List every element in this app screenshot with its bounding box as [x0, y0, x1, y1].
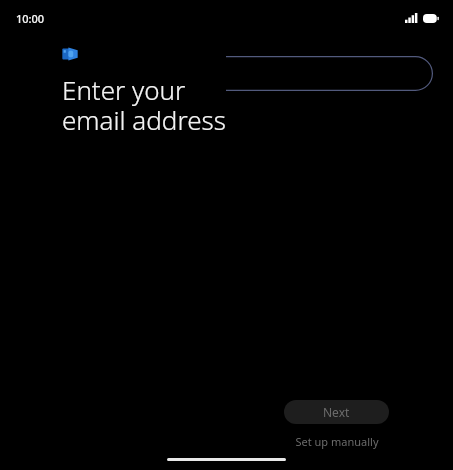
button[interactable]: Email address input	[226, 56, 433, 91]
staticText: Next	[323, 404, 350, 420]
staticText: 10:00	[16, 11, 45, 26]
button[interactable]: Set up manually	[284, 432, 389, 450]
staticText: Enter your email address	[62, 72, 226, 137]
staticText: Set up manually	[295, 434, 379, 449]
button[interactable]: Next	[284, 400, 389, 424]
